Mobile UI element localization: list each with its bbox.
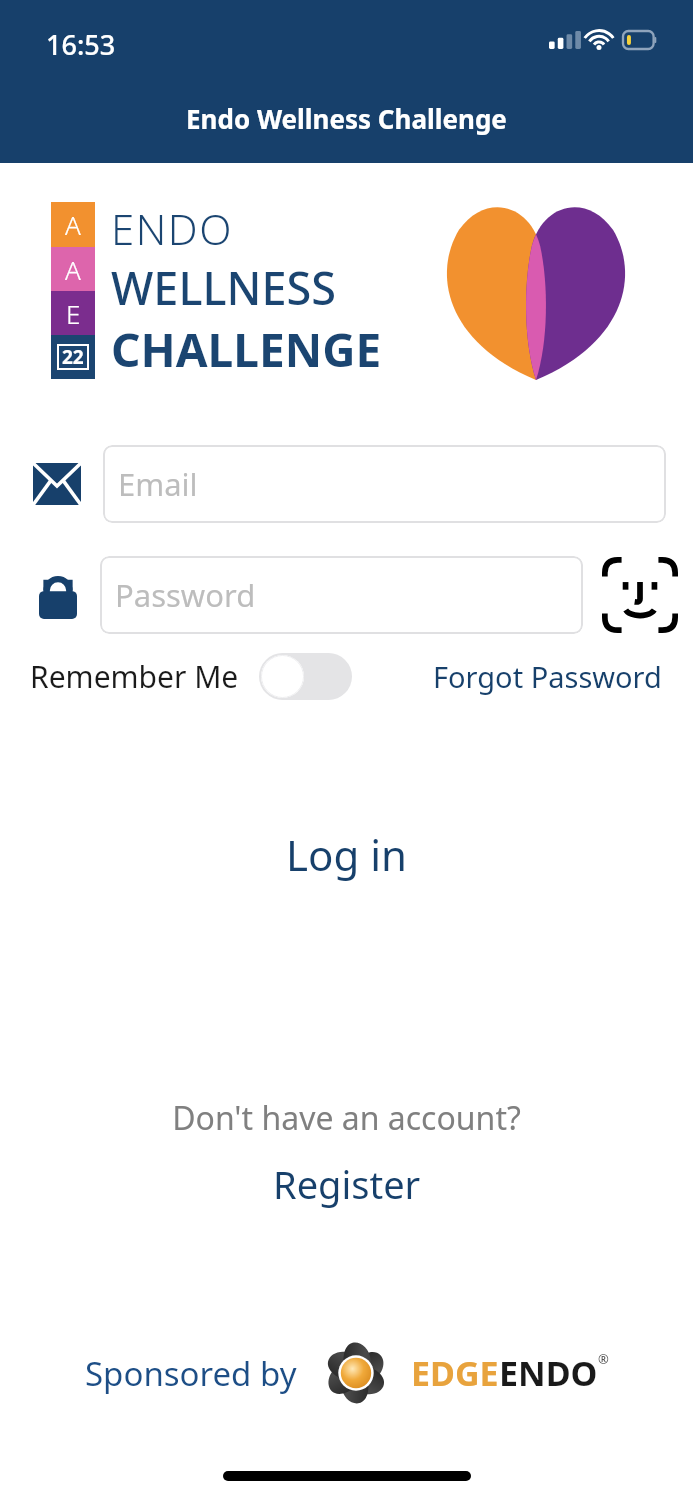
button[interactable]: Forgot Password [429, 653, 666, 700]
staticText: CHALLENGE [111, 318, 382, 381]
staticText: Password [115, 574, 256, 616]
button[interactable]: Email [103, 445, 666, 523]
staticText: E [66, 296, 81, 331]
staticText: Log in [286, 826, 407, 883]
staticText: Register [273, 1158, 421, 1210]
staticText: 16:53 [46, 26, 116, 63]
staticText: Email [118, 463, 198, 505]
button[interactable]: Remember Me [30, 653, 352, 700]
staticText: Remember Me [30, 656, 239, 697]
staticText: WELLNESS [111, 257, 336, 318]
staticText: Endo Wellness Challenge [186, 101, 507, 136]
staticText: Forgot Password [433, 657, 662, 696]
staticText: A [65, 207, 81, 242]
staticText: Don't have an account? [172, 1096, 521, 1140]
staticText: EDGE [411, 1350, 499, 1396]
button[interactable]: Face ID [600, 555, 680, 635]
button[interactable]: Log in [246, 816, 447, 893]
staticText: 22 [62, 344, 84, 370]
button[interactable]: Register [243, 1154, 451, 1214]
staticText: ® [598, 1350, 609, 1368]
other: Email [31, 460, 83, 508]
button[interactable]: Password [100, 556, 583, 634]
staticText: ENDO [499, 1350, 598, 1396]
staticText: ENDO [111, 200, 233, 257]
staticText: A [65, 252, 81, 287]
staticText: Sponsored by [85, 1351, 297, 1396]
button[interactable]: Remember Me toggle [259, 653, 352, 700]
other: Password [36, 570, 80, 620]
